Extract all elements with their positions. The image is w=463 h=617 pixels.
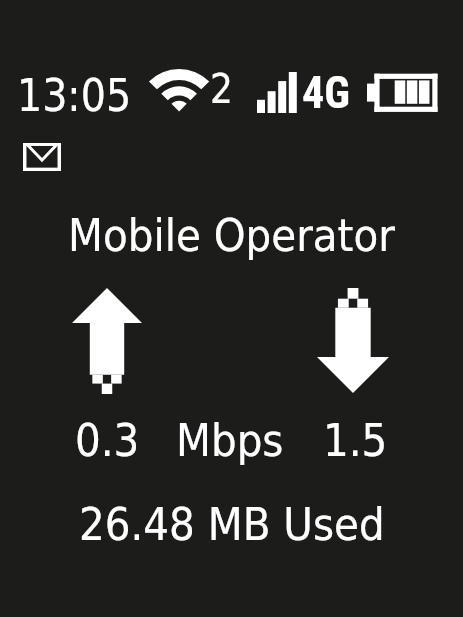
staticText: 0.3 <box>75 414 140 466</box>
button[interactable]: 13:05 <box>17 62 132 114</box>
button[interactable]: 13:05 <box>0 0 463 617</box>
button[interactable]: 26.48 MB Used <box>0 489 463 547</box>
button[interactable]: New message <box>17 134 67 180</box>
staticText: Mbps <box>176 414 284 466</box>
staticText: 13:05 <box>17 70 132 121</box>
staticText: 1.5 <box>323 414 388 466</box>
other: Upload <box>72 288 142 394</box>
staticText: Mobile Operator <box>68 209 395 261</box>
staticText: 4G <box>302 67 350 119</box>
button[interactable]: Mobile Operator <box>0 200 463 258</box>
staticText: 26.48 MB Used <box>79 498 385 550</box>
button[interactable]: 4G signal, 4 bars <box>255 62 350 114</box>
button[interactable]: Battery <box>360 62 445 114</box>
button[interactable]: Wi-Fi connected, 2 bars <box>148 62 232 114</box>
button[interactable]: Upload <box>0 272 463 472</box>
staticText: 2 <box>210 66 233 113</box>
other: Download <box>317 288 389 393</box>
